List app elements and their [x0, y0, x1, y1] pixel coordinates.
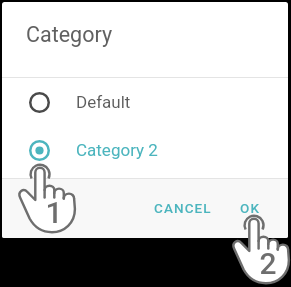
button[interactable]: CANCEL	[142, 192, 224, 224]
other: Step 1 tap here	[17, 163, 77, 233]
button[interactable]: Default	[2, 78, 288, 127]
button[interactable]: Category 2	[2, 126, 288, 175]
staticText: OK	[240, 200, 261, 216]
staticText: 1	[45, 195, 63, 230]
staticText: 2	[259, 246, 277, 281]
staticText: Category 2	[76, 140, 158, 160]
staticText: Category	[26, 22, 113, 47]
button[interactable]: OK	[228, 192, 273, 224]
staticText: CANCEL	[154, 200, 212, 216]
other: Step 2 tap here	[231, 214, 291, 284]
staticText: Default	[76, 92, 131, 112]
